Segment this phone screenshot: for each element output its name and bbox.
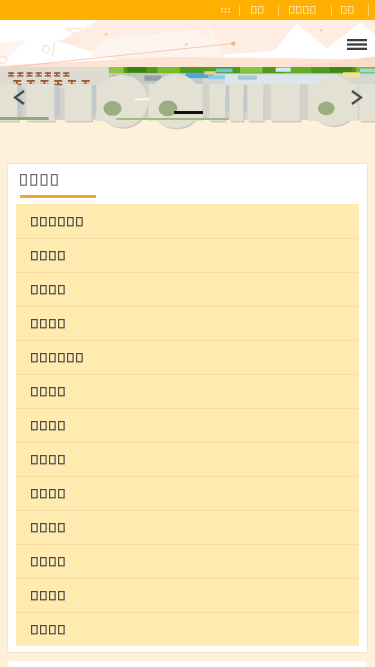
button[interactable]: Previous slide [7,85,31,109]
button[interactable] [16,204,359,238]
button[interactable] [16,340,359,374]
button[interactable] [16,510,359,544]
button[interactable] [20,174,58,186]
button[interactable]: Apps [215,0,235,20]
button[interactable] [16,476,359,510]
button[interactable] [16,578,359,612]
button[interactable] [247,2,267,18]
button[interactable]: Menu [342,29,372,59]
button[interactable] [16,306,359,340]
button[interactable] [16,374,359,408]
button[interactable] [16,442,359,476]
button[interactable] [285,2,320,18]
button[interactable] [16,544,359,578]
button[interactable] [16,408,359,442]
button[interactable]: Next slide [344,85,368,109]
button[interactable] [16,238,359,272]
button[interactable] [16,272,359,306]
button[interactable] [337,2,357,18]
button[interactable] [16,612,359,646]
